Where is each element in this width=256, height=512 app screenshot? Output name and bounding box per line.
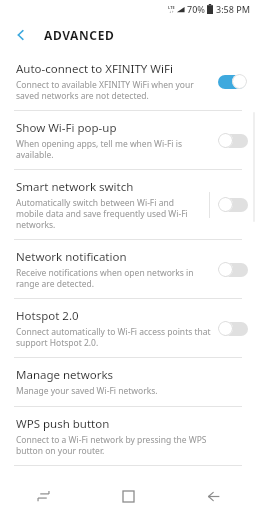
button[interactable]: Back <box>171 480 256 512</box>
button[interactable]: Auto-connect to XFINITY WiFi toggle <box>218 73 248 90</box>
button[interactable]: Auto-connect to XFINITY WiFi <box>0 52 256 111</box>
staticText: Smart network switch <box>16 179 134 195</box>
staticText: Network notification <box>16 249 127 265</box>
staticText: ↓↑ <box>169 10 175 13</box>
staticText: Manage networks <box>16 367 114 383</box>
button[interactable]: Network notification <box>0 240 256 299</box>
button[interactable]: Back <box>8 22 34 48</box>
staticText: Connect automatically to Wi-Fi access po… <box>16 326 212 348</box>
button[interactable]: Hotspot 2.0 <box>0 299 256 358</box>
button[interactable]: WPS push button <box>0 407 256 466</box>
button[interactable]: Smart network switch <box>0 170 256 240</box>
button[interactable]: Hotspot 2.0 toggle <box>218 320 248 337</box>
staticText: 3:58 PM <box>216 3 250 15</box>
staticText: 70% <box>187 3 205 15</box>
staticText: ADVANCED <box>44 27 115 43</box>
staticText: WPS push button <box>16 416 110 432</box>
staticText: Auto-connect to XFINITY WiFi <box>16 61 173 77</box>
staticText: Show Wi-Fi pop-up <box>16 120 117 136</box>
staticText: When opening apps, tell me when Wi-Fi is… <box>16 138 212 160</box>
button[interactable]: Show Wi-Fi pop-up <box>0 111 256 170</box>
staticText: Connect to available XFINITY WiFi when y… <box>16 79 212 101</box>
staticText: Connect to a Wi-Fi network by pressing t… <box>16 434 212 456</box>
staticText: Hotspot 2.0 <box>16 308 79 324</box>
button[interactable]: Manage networks <box>0 358 256 407</box>
staticText: Receive notifications when open networks… <box>16 267 212 289</box>
staticText: Automatically switch between Wi-Fi and m… <box>16 197 203 230</box>
staticText: LTE <box>168 5 175 10</box>
button[interactable]: Network notification toggle <box>218 261 248 278</box>
button[interactable]: Show Wi-Fi pop-up toggle <box>218 132 248 149</box>
button[interactable]: Recents <box>0 480 86 512</box>
button[interactable]: Smart network switch toggle <box>218 196 248 213</box>
button[interactable]: Home <box>86 480 171 512</box>
staticText: Manage your saved Wi-Fi networks. <box>16 385 158 397</box>
